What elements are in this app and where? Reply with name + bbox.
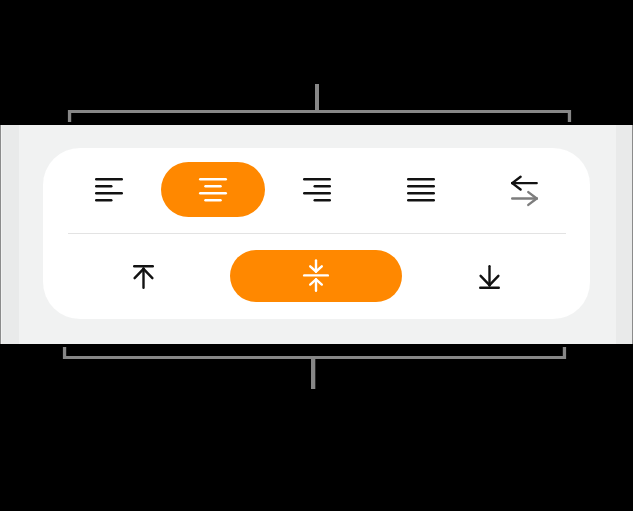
- button[interactable]: Justify: [406, 175, 436, 205]
- button[interactable]: Align centre: [161, 162, 265, 217]
- button[interactable]: Align bottom: [477, 263, 502, 290]
- button[interactable]: Text direction: [508, 171, 542, 201]
- button[interactable]: Align top: [131, 263, 156, 290]
- button[interactable]: Align left: [94, 175, 124, 205]
- button[interactable]: Align middle: [230, 250, 402, 302]
- button[interactable]: Align right: [302, 175, 332, 205]
